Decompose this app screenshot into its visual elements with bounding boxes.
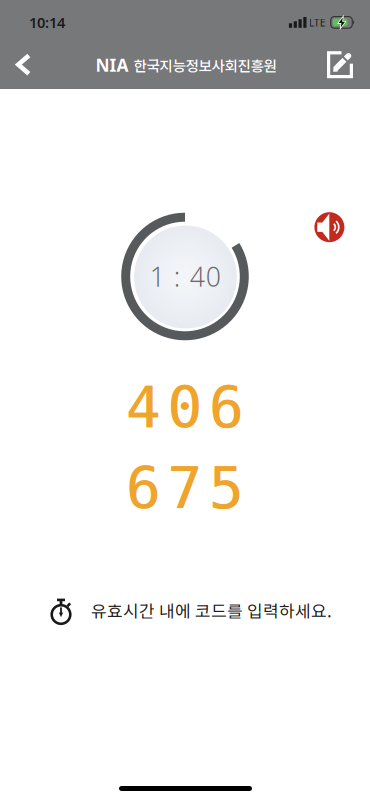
button[interactable]: Back: [16, 53, 31, 76]
staticText: 406: [126, 375, 244, 441]
staticText: LTE: [309, 15, 326, 29]
staticText: 675: [126, 456, 244, 521]
button[interactable]: Play code aloud: [314, 212, 344, 242]
staticText: 675: [127, 456, 245, 521]
staticText: 406: [127, 375, 245, 441]
staticText: 1 : 40: [150, 259, 221, 294]
staticText: 유효시간 내에 코드를 입력하세요.: [91, 598, 332, 622]
button[interactable]: Edit: [327, 51, 354, 78]
staticText: NIA: [95, 53, 128, 76]
staticText: 10:14: [29, 13, 65, 32]
staticText: 한국지능정보사회진흥원: [133, 54, 276, 76]
